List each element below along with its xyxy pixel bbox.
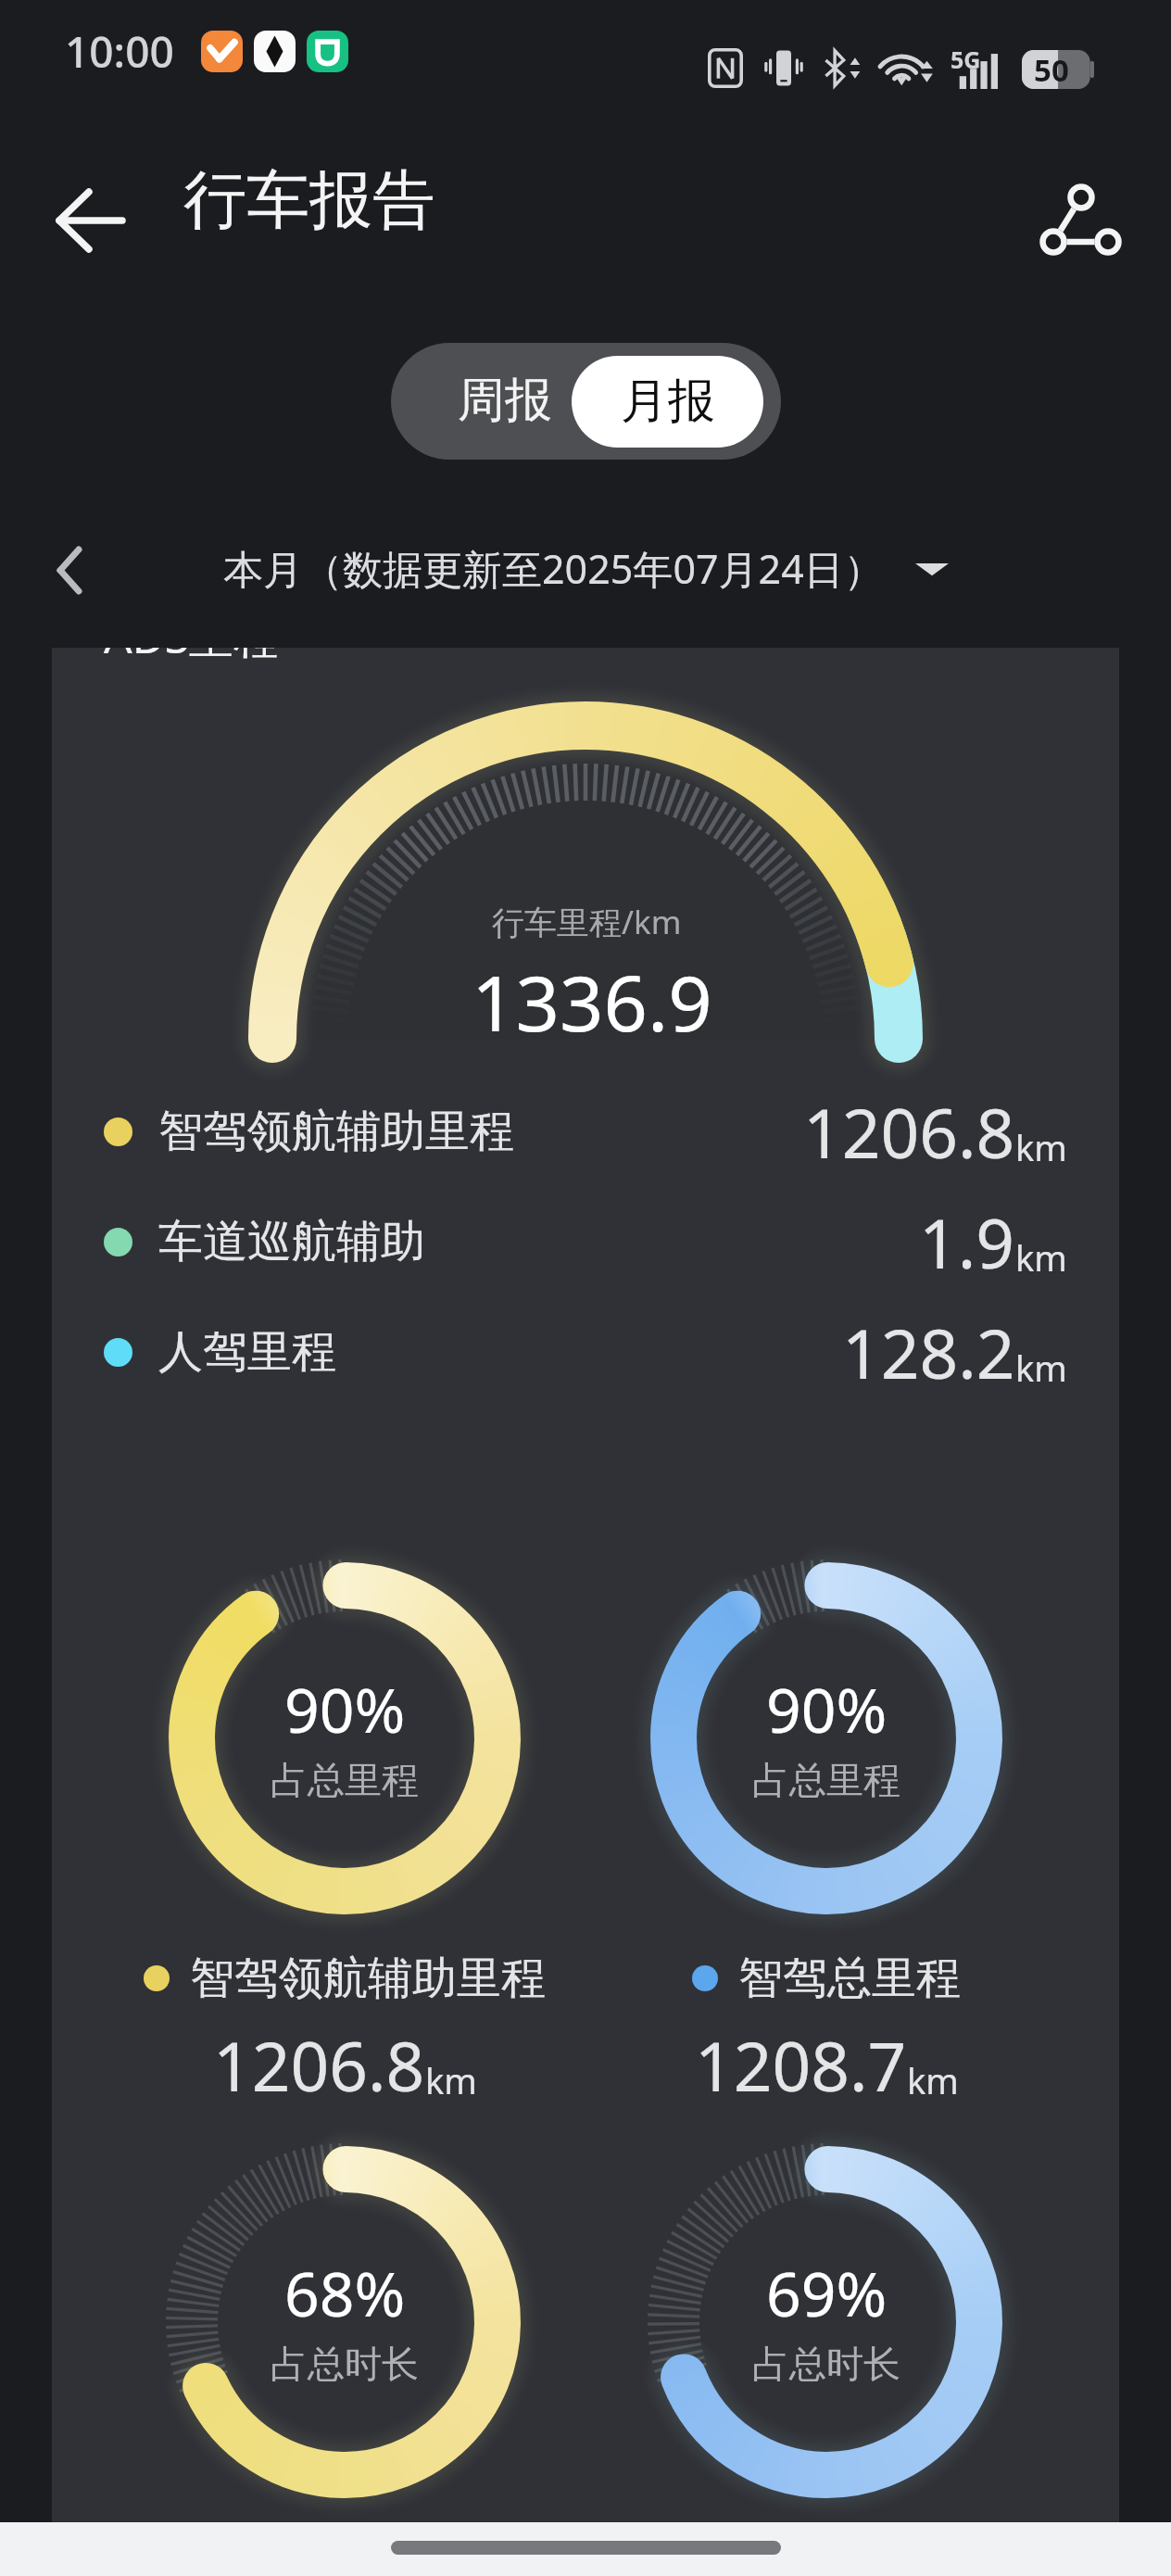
staticText: 行车里程/km — [492, 900, 682, 944]
staticText: km — [425, 2056, 477, 2104]
button[interactable]: 车道巡航辅助 — [104, 1194, 1067, 1289]
button[interactable]: 月报 — [572, 356, 763, 448]
staticText: 占总里程 — [752, 1757, 900, 1803]
staticText: 1206.8 — [213, 2019, 425, 2111]
button[interactable]: Share — [1028, 165, 1140, 271]
staticText: 智驾总里程 — [738, 1951, 961, 2006]
staticText: km — [1015, 1233, 1067, 1282]
staticText: 1208.7 — [695, 2019, 907, 2111]
staticText: 智驾领航辅助里程 — [158, 1104, 514, 1159]
staticText: 1336.9 — [472, 949, 712, 1054]
staticText: 车道巡航辅助 — [158, 1214, 425, 1269]
staticText: ADS里程 — [104, 648, 279, 667]
staticText: km — [1015, 1123, 1067, 1171]
button[interactable]: 人驾里程 — [104, 1305, 1067, 1399]
staticText: 1206.8 — [803, 1086, 1015, 1178]
staticText: 68% — [284, 2251, 406, 2334]
button[interactable]: Back — [31, 174, 150, 276]
staticText: 智驾领航辅助里程 — [190, 1951, 546, 2006]
staticText: 月报 — [621, 372, 715, 431]
button[interactable]: 智驾领航辅助里程 — [104, 1084, 1067, 1179]
button[interactable]: Previous period — [32, 519, 116, 602]
staticText: km — [907, 2056, 959, 2104]
staticText: 90% — [766, 1667, 888, 1750]
staticText: 行车报告 — [183, 161, 435, 241]
staticText: 128.2 — [842, 1307, 1015, 1398]
staticText: 本月（数据更新至2025年07月24日） — [223, 541, 884, 596]
button[interactable]: 周报 — [391, 343, 572, 460]
staticText: 90% — [284, 1667, 406, 1750]
staticText: 占总时长 — [752, 2341, 900, 2387]
staticText: 10:00 — [65, 22, 174, 81]
staticText: 人驾里程 — [158, 1324, 336, 1380]
staticText: 50 — [1034, 49, 1069, 88]
staticText: 周报 — [458, 371, 552, 430]
staticText: 69% — [766, 2251, 888, 2334]
button[interactable]: 本月（数据更新至2025年07月24日） — [223, 541, 949, 596]
staticText: 占总时长 — [271, 2341, 419, 2387]
staticText: 5G — [951, 44, 981, 75]
staticText: 占总里程 — [271, 1757, 419, 1803]
staticText: km — [1015, 1344, 1067, 1392]
staticText: 1.9 — [919, 1196, 1015, 1288]
